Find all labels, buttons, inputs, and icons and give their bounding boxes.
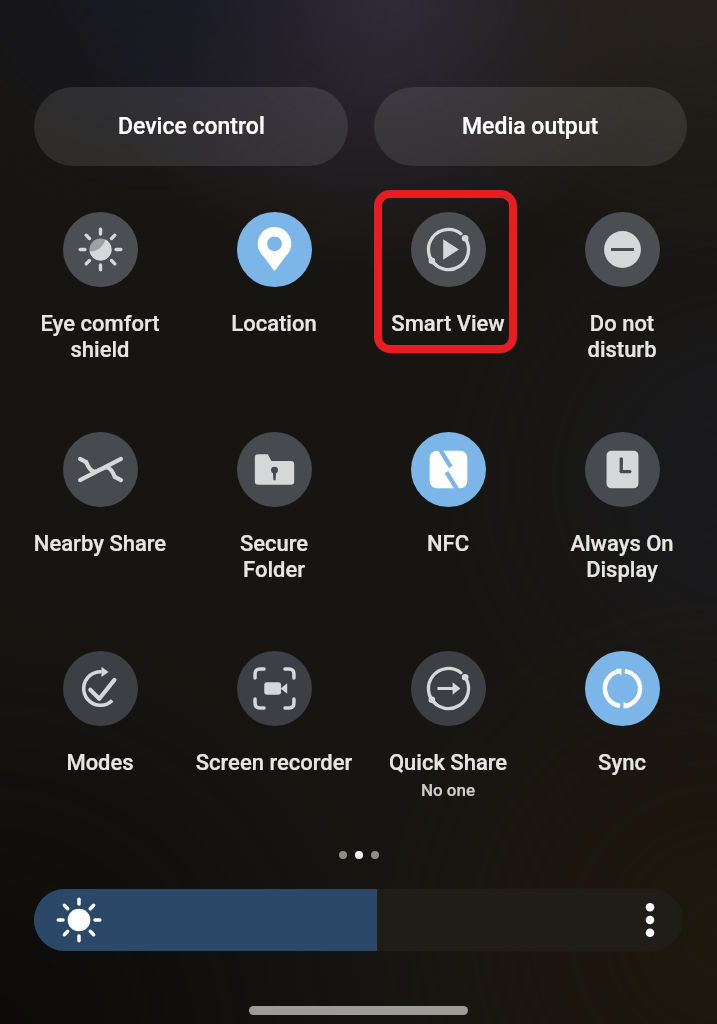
- staticText: Always On Display: [535, 531, 709, 582]
- staticText: Nearby Share: [13, 531, 187, 557]
- button[interactable]: Page 1: [339, 851, 347, 859]
- button[interactable]: NFC: [361, 426, 535, 591]
- button[interactable]: Location: [187, 206, 361, 371]
- staticText: Quick Share: [361, 750, 535, 776]
- button[interactable]: Modes: [13, 645, 187, 810]
- staticText: Screen recorder: [187, 750, 361, 776]
- staticText: Modes: [13, 750, 187, 776]
- staticText: No one: [361, 780, 535, 800]
- button[interactable]: Always On Display: [535, 426, 709, 591]
- staticText: Location: [187, 311, 361, 337]
- button[interactable]: Do not disturb: [535, 206, 709, 371]
- button[interactable]: Brightness: [34, 889, 683, 951]
- staticText: NFC: [361, 531, 535, 557]
- button[interactable]: Page 2: [355, 851, 363, 859]
- staticText: Media output: [462, 113, 599, 140]
- staticText: Eye comfort shield: [13, 311, 187, 362]
- button[interactable]: Screen recorder: [187, 645, 361, 810]
- staticText: Do not disturb: [535, 311, 709, 362]
- button[interactable]: Eye comfort shield: [13, 206, 187, 371]
- button[interactable]: Page 3: [371, 851, 379, 859]
- staticText: Sync: [535, 750, 709, 776]
- staticText: Secure Folder: [187, 531, 361, 582]
- button[interactable]: Media output: [374, 87, 687, 166]
- button[interactable]: Device control: [34, 87, 348, 166]
- staticText: Device control: [118, 113, 265, 140]
- button[interactable]: Smart View: [361, 206, 535, 371]
- button[interactable]: Nearby Share: [13, 426, 187, 591]
- button[interactable]: Quick Share: [361, 645, 535, 810]
- button[interactable]: Secure Folder: [187, 426, 361, 591]
- staticText: Smart View: [361, 311, 535, 337]
- button[interactable]: Sync: [535, 645, 709, 810]
